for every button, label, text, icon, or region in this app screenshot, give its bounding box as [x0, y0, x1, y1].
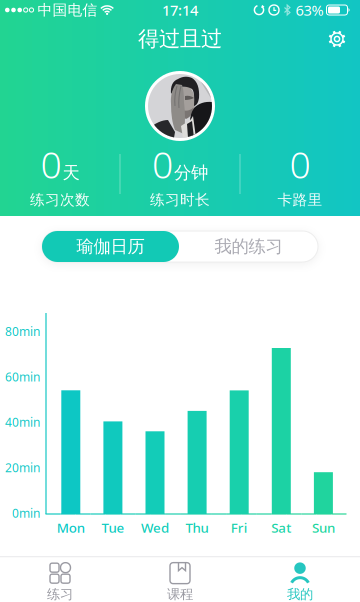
staticText: 80min	[5, 323, 40, 339]
staticText: 0	[152, 139, 173, 189]
staticText: Mon	[57, 519, 85, 536]
staticText: 卡路里	[277, 191, 322, 209]
staticText: 练习次数	[30, 191, 90, 209]
staticText: Wed	[141, 519, 169, 536]
staticText: 中国电信	[38, 1, 98, 19]
staticText: 分钟	[174, 162, 208, 183]
staticText: 0	[289, 139, 310, 189]
button[interactable]: 练习	[0, 562, 120, 602]
staticText: 40min	[5, 414, 40, 430]
staticText: Fri	[231, 519, 248, 536]
staticText: 课程	[167, 586, 193, 602]
staticText: Sun	[312, 519, 335, 536]
button[interactable]: Settings	[328, 30, 360, 48]
staticText: 63%	[295, 0, 323, 20]
button[interactable]: 我的	[240, 562, 360, 602]
staticText: 天	[62, 162, 79, 183]
staticText: 20min	[5, 460, 40, 475]
staticText: 我的	[287, 586, 313, 602]
staticText: 0min	[12, 505, 40, 521]
staticText: Thu	[186, 519, 209, 536]
staticText: 17:14	[162, 0, 198, 20]
staticText: Tue	[101, 519, 124, 536]
staticText: 练习	[47, 586, 73, 602]
button[interactable]: 课程	[120, 562, 240, 602]
staticText: 我的练习	[214, 236, 282, 257]
button[interactable]: 瑜伽日历	[42, 231, 179, 262]
button[interactable]: 我的练习	[179, 231, 318, 262]
staticText: Sat	[271, 519, 291, 536]
staticText: 瑜伽日历	[76, 236, 144, 257]
staticText: 得过且过	[138, 26, 222, 52]
staticText: 练习时长	[150, 191, 210, 209]
staticText: 0	[40, 139, 61, 189]
staticText: 60min	[5, 369, 40, 385]
